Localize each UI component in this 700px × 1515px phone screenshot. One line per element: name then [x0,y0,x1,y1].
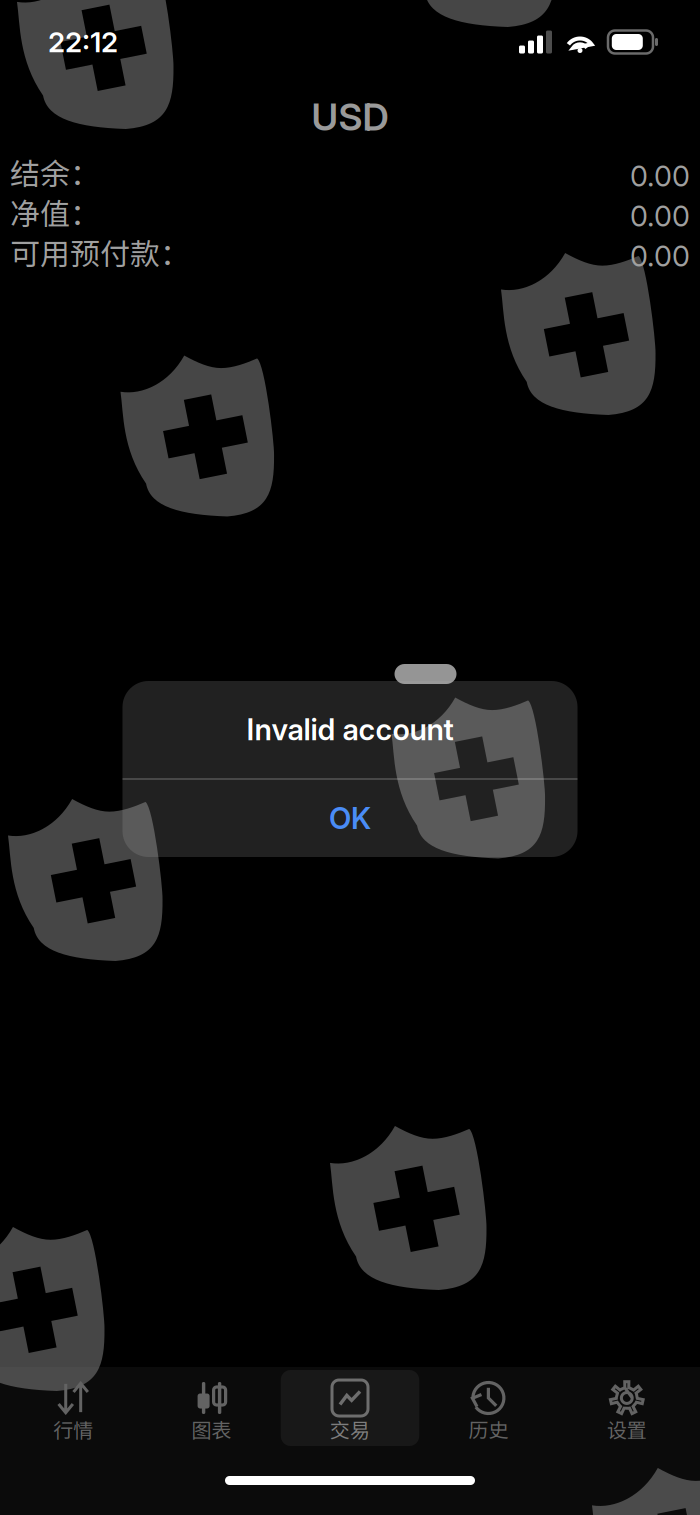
staticText: 0.00 [630,239,690,273]
staticText: 行情 [53,1414,93,1443]
staticText: 净值： [10,190,100,234]
button[interactable]: 历史 [419,1370,558,1446]
button[interactable]: 图表 [142,1370,281,1446]
button[interactable]: 交易 [281,1370,419,1446]
staticText: USD [311,94,388,140]
staticText: 图表 [192,1414,232,1443]
button[interactable]: 行情 [4,1370,142,1446]
staticText: 可用预付款： [10,230,190,274]
staticText: 0.00 [630,159,690,193]
staticText: 0.00 [630,199,690,233]
button[interactable]: OK [122,780,577,857]
staticText: Invalid account [246,712,453,747]
staticText: 交易 [330,1414,370,1443]
staticText: 22:12 [48,25,118,59]
staticText: 结余： [10,150,100,194]
staticText: OK [329,801,371,836]
staticText: 设置 [607,1414,647,1443]
button[interactable]: 设置 [558,1370,696,1446]
staticText: 历史 [468,1414,508,1443]
